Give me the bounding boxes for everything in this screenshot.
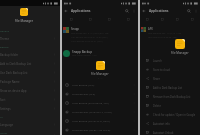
button[interactable]: Check for update / Open in Google Play [140,110,200,119]
button[interactable]: Tab [140,15,155,24]
staticText: Backup folder [0,53,19,57]
staticText: Last backup 2024-03-01 12:50 (APK) [71,36,108,39]
button[interactable]: Local Backup (APK) [62,80,138,89]
button[interactable]: Add to Dark Backup List [140,83,200,92]
button[interactable]: Theme [0,34,60,43]
button[interactable]: Tab [155,15,170,24]
button[interactable]: Use Dark Backup List [0,68,60,77]
staticText: Autostart Unlock [153,131,174,135]
staticText: UI [0,115,3,118]
button[interactable]: More options [194,9,198,13]
button[interactable]: Launch [140,56,200,65]
staticText: Cloud Backup (APK) [72,92,95,95]
staticText: com.example.apk 1.0 (4) 12.1 MB [148,32,181,35]
staticText: Snapp Backup [72,50,93,54]
staticText: com.snapp.backup 1.2.0 [72,54,97,57]
staticText: File Manager [171,51,189,55]
staticText: Check for update / Open in Google Play [153,113,197,117]
staticText: Show on-device App [0,89,27,93]
staticText: Backup [0,45,9,48]
button[interactable]: Local Backup (CHAPTLTTY, 8291) [62,116,138,125]
button[interactable]: Autostart Unlock [140,128,200,135]
staticText: Add to Dark Backup List [0,62,32,66]
button[interactable]: Local Backup (2019/09/08, APK) [62,98,138,107]
staticText: Theme [0,37,10,41]
button[interactable]: Search [187,9,191,13]
staticText: File Manager [91,72,109,76]
button[interactable]: Delete [140,101,200,110]
staticText: Settings [0,107,11,111]
button[interactable]: Language [0,120,60,129]
staticText: APK [148,27,153,31]
staticText: Package Name [0,80,20,84]
staticText: Add to Dark Backup List [153,86,183,90]
button[interactable]: Backup folder [0,50,60,59]
staticText: Launch [153,59,162,63]
button[interactable]: Remove from Dark Backup List [140,92,200,101]
button[interactable]: Search [125,9,129,13]
staticText: Remove from Dark Backup List [153,95,191,99]
button[interactable]: Back [64,9,68,13]
staticText: Local Backup (CHAPTLTTY, 8291) [72,119,110,122]
staticText: General [0,29,10,32]
staticText: Autostart info [153,122,170,126]
button[interactable]: More options [132,9,136,13]
button[interactable]: Tab [170,15,185,24]
button[interactable]: General [0,27,60,34]
button[interactable]: Back [142,9,146,13]
staticText: Last backup 2019-09-08 (APK) [148,36,177,39]
button[interactable]: Snapp [62,27,138,45]
button[interactable]: Autostart info [140,119,200,128]
button[interactable]: Cloud Backup (START 1.03 CHFD) [62,125,138,134]
staticText: Local Backup (2019/09/08, APK) [72,101,109,104]
staticText: Cloud Backup (2019/09/14, 2.07G) [72,110,112,113]
staticText: com.snapp.cab 5.1.2 (1452) 83.1 MB [71,32,109,35]
button[interactable]: Tab [185,15,200,24]
button[interactable]: Cloud Backup (APK) [62,89,138,98]
staticText: Delete [153,104,161,108]
staticText: Store to cloud [153,68,170,72]
staticText: Sort [0,98,6,102]
staticText: Share [153,77,160,81]
button[interactable]: Cloud Backup (2019/09/14, 2.07G) [62,107,138,116]
button[interactable]: Snapp Backup [62,48,138,58]
button[interactable]: Settings [0,104,60,113]
staticText: Applications [149,8,169,13]
button[interactable]: Add to Dark Backup List [0,59,60,68]
button[interactable]: Store to cloud [140,65,200,74]
staticText: Cloud Backup (START 1.03 CHFD) [72,128,111,131]
staticText: Snapp [71,27,79,31]
staticText: About [0,131,8,134]
staticText: Local Backup (APK) [72,83,95,86]
staticText: Local Backup 2024-03-01 (APK) [71,40,103,43]
button[interactable]: Show on-device App [0,86,60,95]
staticText: Use Dark Backup List [0,71,28,75]
button[interactable]: Package Name [0,77,60,86]
button[interactable]: Backup [0,43,60,50]
staticText: File Manager [15,19,33,23]
staticText: Language [0,123,14,127]
staticText: Applications [71,8,91,13]
button[interactable]: Share [140,74,200,83]
